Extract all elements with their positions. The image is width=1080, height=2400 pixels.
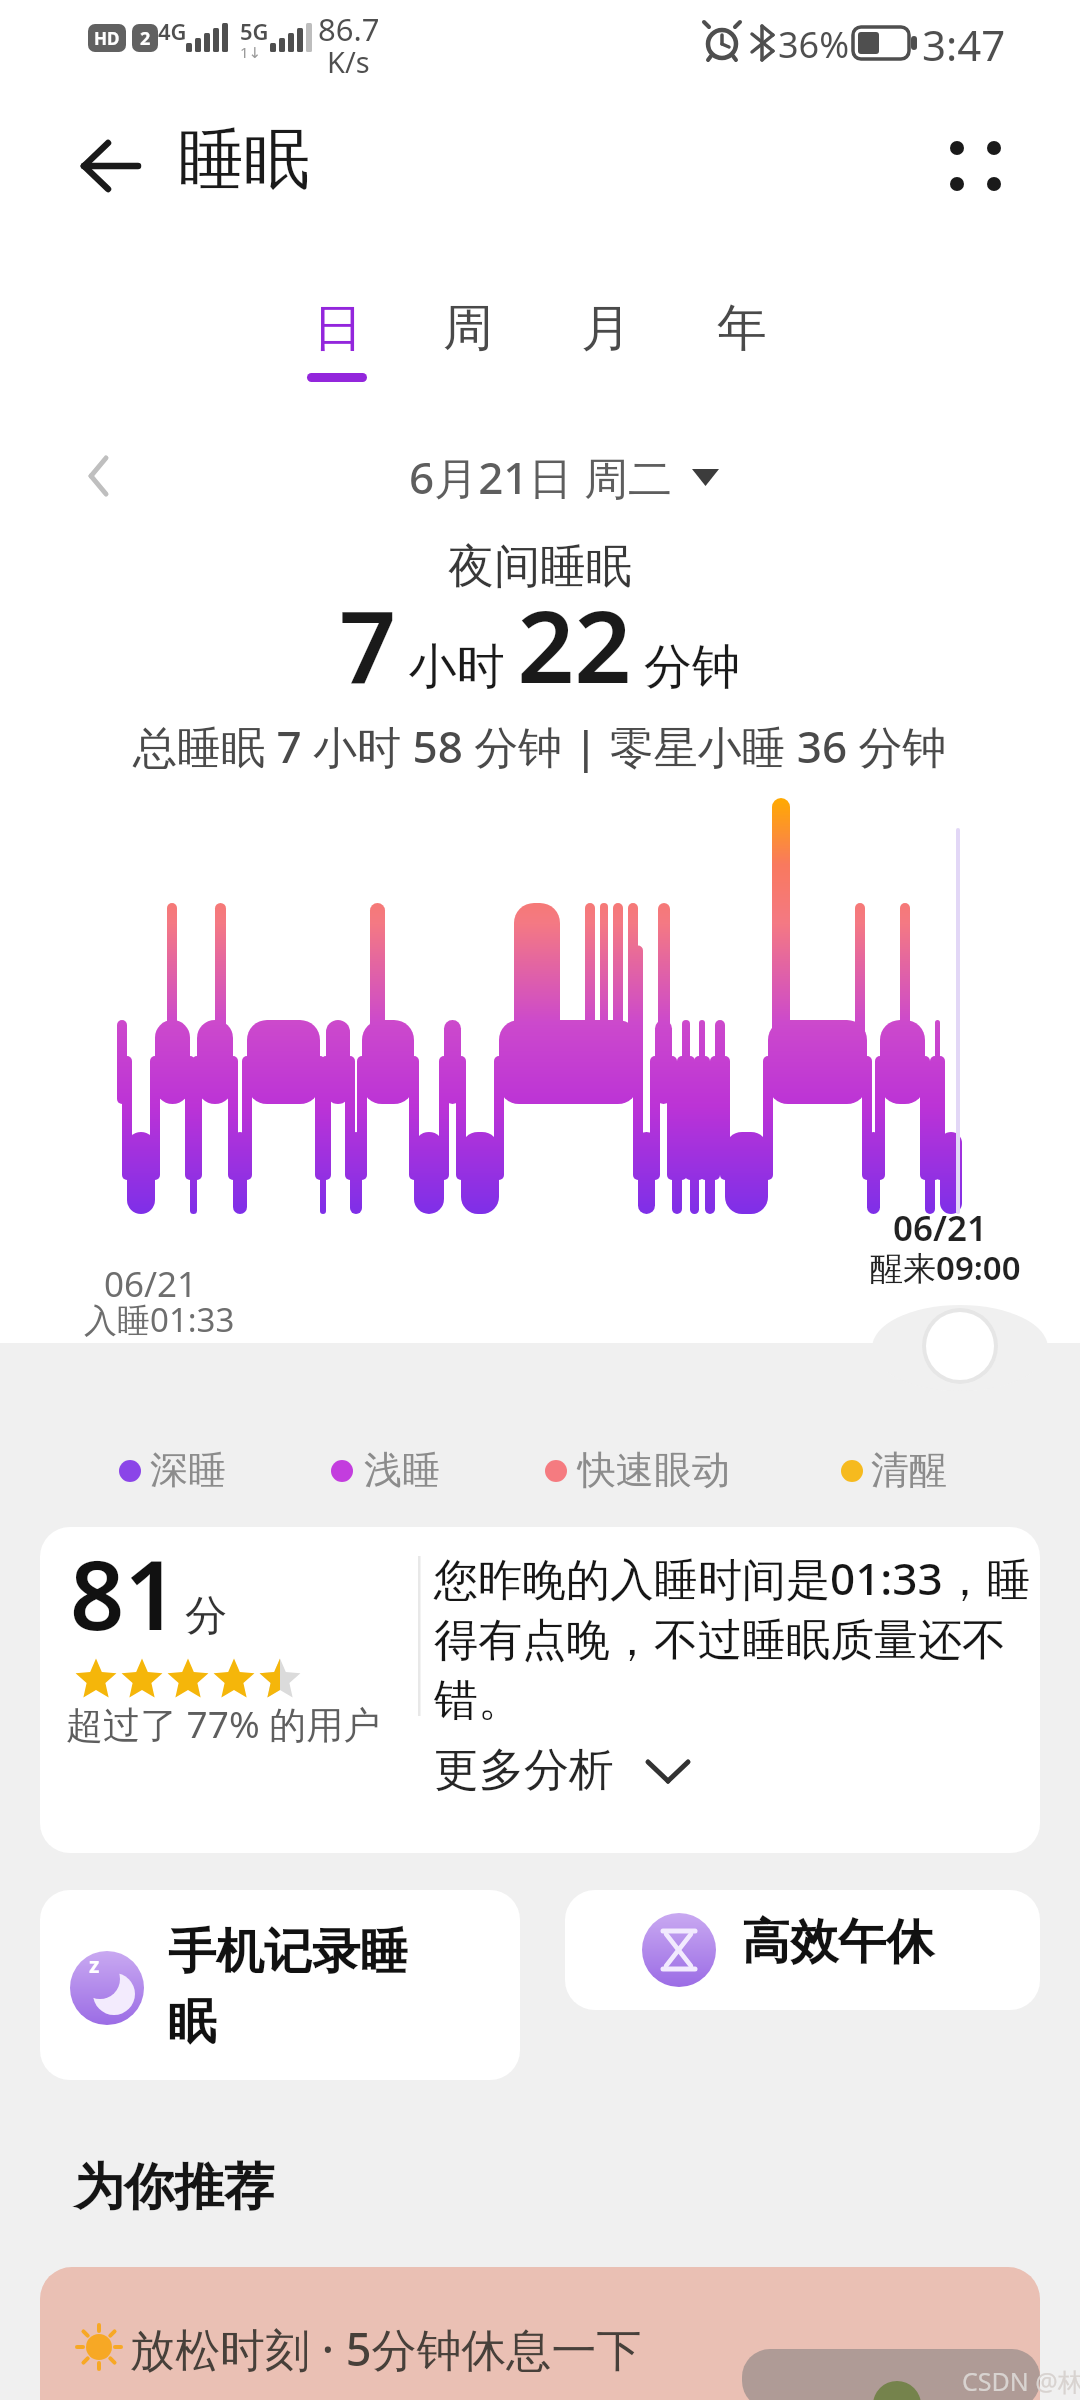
- staticText: 分: [185, 1590, 227, 1643]
- staticText: 06/21: [893, 1204, 988, 1252]
- staticText: 2: [140, 26, 151, 51]
- button[interactable]: [330, 440, 750, 506]
- staticText: 81: [70, 1528, 179, 1657]
- staticText: 月: [581, 297, 631, 360]
- staticText: 总睡眠 7 小时 58 分钟 | 零星小睡 36 分钟: [133, 716, 947, 776]
- staticText: 86.7: [318, 8, 380, 50]
- button[interactable]: [565, 1890, 1040, 2010]
- staticText: 6月21日 周二: [409, 447, 672, 507]
- staticText: 手机记录睡 眠: [168, 1922, 408, 2053]
- staticText: CSDN @林宸南: [962, 2364, 1080, 2398]
- staticText: 3:47: [922, 16, 1006, 73]
- staticText: K/s: [327, 42, 370, 81]
- staticText: 周: [443, 297, 493, 360]
- staticText: z: [89, 1951, 100, 1980]
- staticText: 日: [313, 297, 363, 360]
- staticText: 深睡: [150, 1446, 226, 1494]
- staticText: 浅睡: [364, 1446, 440, 1494]
- staticText: 7 小时 22 分钟: [339, 576, 741, 712]
- staticText: 快速眼动: [578, 1446, 730, 1494]
- staticText: 36%: [778, 20, 850, 69]
- button[interactable]: [420, 1738, 670, 1802]
- staticText: 年: [717, 297, 767, 360]
- button[interactable]: 日: [292, 290, 384, 366]
- staticText: 您昨晚的入睡时间是01:33，睡 得有点晚，不过睡眠质量还不 错。: [434, 1548, 1031, 1728]
- staticText: 入睡01:33: [84, 1297, 235, 1342]
- staticText: 睡眠: [178, 118, 310, 201]
- staticText: 为你推荐: [74, 2156, 274, 2219]
- staticText: 超过了 77% 的用户: [66, 1698, 381, 1749]
- staticText: 清醒: [871, 1446, 947, 1494]
- staticText: 4G: [158, 16, 187, 46]
- staticText: 放松时刻 · 5分钟休息一下: [130, 2318, 642, 2379]
- staticText: 醒来09:00: [870, 1245, 1021, 1290]
- button[interactable]: [40, 2267, 1040, 2400]
- button[interactable]: 周: [422, 290, 514, 366]
- staticText: 高效午休: [742, 1912, 934, 1972]
- staticText: 夜间睡眠: [448, 538, 632, 596]
- button[interactable]: [60, 130, 155, 205]
- button[interactable]: [935, 125, 1015, 205]
- staticText: HD: [94, 27, 120, 50]
- staticText: 1↓: [240, 42, 262, 62]
- button[interactable]: [40, 1890, 520, 2080]
- staticText: 更多分析: [434, 1742, 614, 1799]
- button[interactable]: 月: [560, 290, 652, 366]
- staticText: 06/21: [104, 1260, 198, 1308]
- button[interactable]: 年: [696, 290, 788, 366]
- staticText: 5G: [240, 16, 269, 46]
